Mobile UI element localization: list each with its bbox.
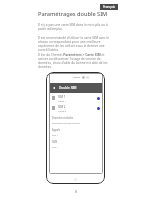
- staticText: Carte 1: [58, 99, 67, 102]
- staticText: SIM 2: [58, 105, 66, 109]
- staticText: SIM 1: [58, 95, 66, 99]
- staticText: Il lite du Chemin Paramètres > Carte SIM…: [38, 53, 114, 69]
- button[interactable]: Section tab: [100, 4, 118, 10]
- other: Back: [52, 86, 56, 90]
- staticText: SIM 1: [52, 133, 59, 136]
- button[interactable]: SIM 1: [49, 93, 103, 103]
- button[interactable]: SIM 2: [49, 103, 103, 113]
- staticText: Double SIM: [59, 86, 77, 90]
- staticText: Appels: [52, 128, 61, 132]
- staticText: Il n'y a pas une carte SIM dans le mini-…: [38, 23, 114, 31]
- staticText: SIM 1: [52, 145, 59, 148]
- staticText: Paramétrages double SIM: [38, 10, 108, 18]
- staticText: Français: [103, 5, 115, 9]
- staticText: SMS: [52, 140, 58, 144]
- button[interactable]: Back: [49, 83, 103, 93]
- staticText: Données mobiles: [52, 116, 74, 120]
- staticText: Données mobiles actives: [52, 121, 80, 124]
- staticText: Il est recommandé d'utiliser la carte SI…: [38, 36, 114, 52]
- staticText: Carte 2: [58, 109, 67, 112]
- staticText: 8: [75, 189, 78, 194]
